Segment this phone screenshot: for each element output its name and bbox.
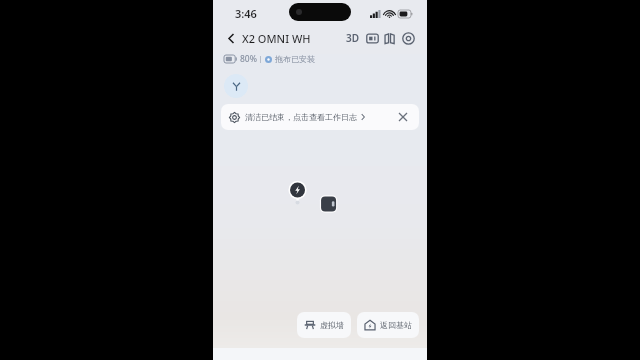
staticText: 80% <box>240 53 257 65</box>
button[interactable]: Back <box>223 30 239 46</box>
button[interactable]: Dismiss <box>395 109 411 125</box>
button[interactable]: Cleaning mode <box>224 74 248 98</box>
button[interactable]: Map view <box>363 29 381 47</box>
staticText: 3D <box>346 31 360 45</box>
button[interactable]: Settings <box>399 29 417 47</box>
button[interactable]: 返回基站 <box>357 312 419 338</box>
button[interactable]: Rooms <box>381 29 399 47</box>
button[interactable]: 虚拟墙 <box>297 312 351 338</box>
staticText: 清洁已结束，点击查看工作日志 <box>245 112 357 122</box>
button[interactable]: 3D <box>346 31 360 45</box>
staticText: 3:46 <box>235 6 257 21</box>
staticText: X2 OMNI WH <box>242 31 311 46</box>
button[interactable]: 清洁已结束，点击查看工作日志 <box>221 104 419 130</box>
staticText: 虚拟墙 <box>320 320 344 330</box>
staticText: 返回基站 <box>380 320 412 330</box>
staticText: 拖布已安装 <box>275 54 315 64</box>
